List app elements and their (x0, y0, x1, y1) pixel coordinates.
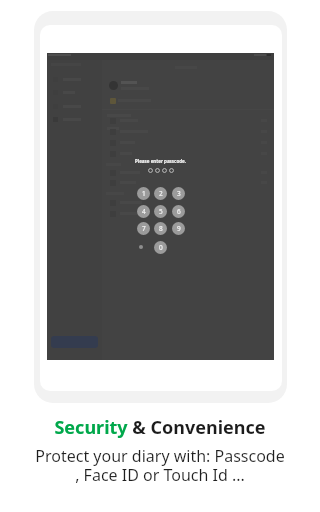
button[interactable]: 8 (154, 222, 167, 235)
staticText: 6 (177, 207, 181, 216)
staticText: 3 (177, 189, 181, 198)
button[interactable]: 7 (137, 222, 150, 235)
button[interactable]: 1 (137, 187, 150, 200)
staticText: 9 (177, 224, 181, 233)
button[interactable]: 2 (154, 187, 167, 200)
other: Delete (139, 245, 143, 249)
button[interactable]: 0 (154, 241, 167, 254)
staticText: 7 (142, 224, 146, 233)
button[interactable]: 4 (137, 205, 150, 218)
button[interactable]: 6 (172, 205, 185, 218)
button[interactable]: 5 (154, 205, 167, 218)
staticText: 2 (159, 189, 163, 198)
button[interactable]: 9 (172, 222, 185, 235)
staticText: 5 (159, 207, 163, 216)
staticText: 4 (142, 207, 146, 216)
staticText: Protect your diary with: Passcode , Face… (0, 445, 320, 486)
staticText: Security & Convenience (54, 415, 266, 440)
staticText: Please enter passcode. (135, 158, 187, 164)
staticText: 1 (142, 189, 146, 198)
staticText: 8 (159, 224, 163, 233)
staticText: 0 (159, 243, 163, 252)
button[interactable]: 3 (172, 187, 185, 200)
